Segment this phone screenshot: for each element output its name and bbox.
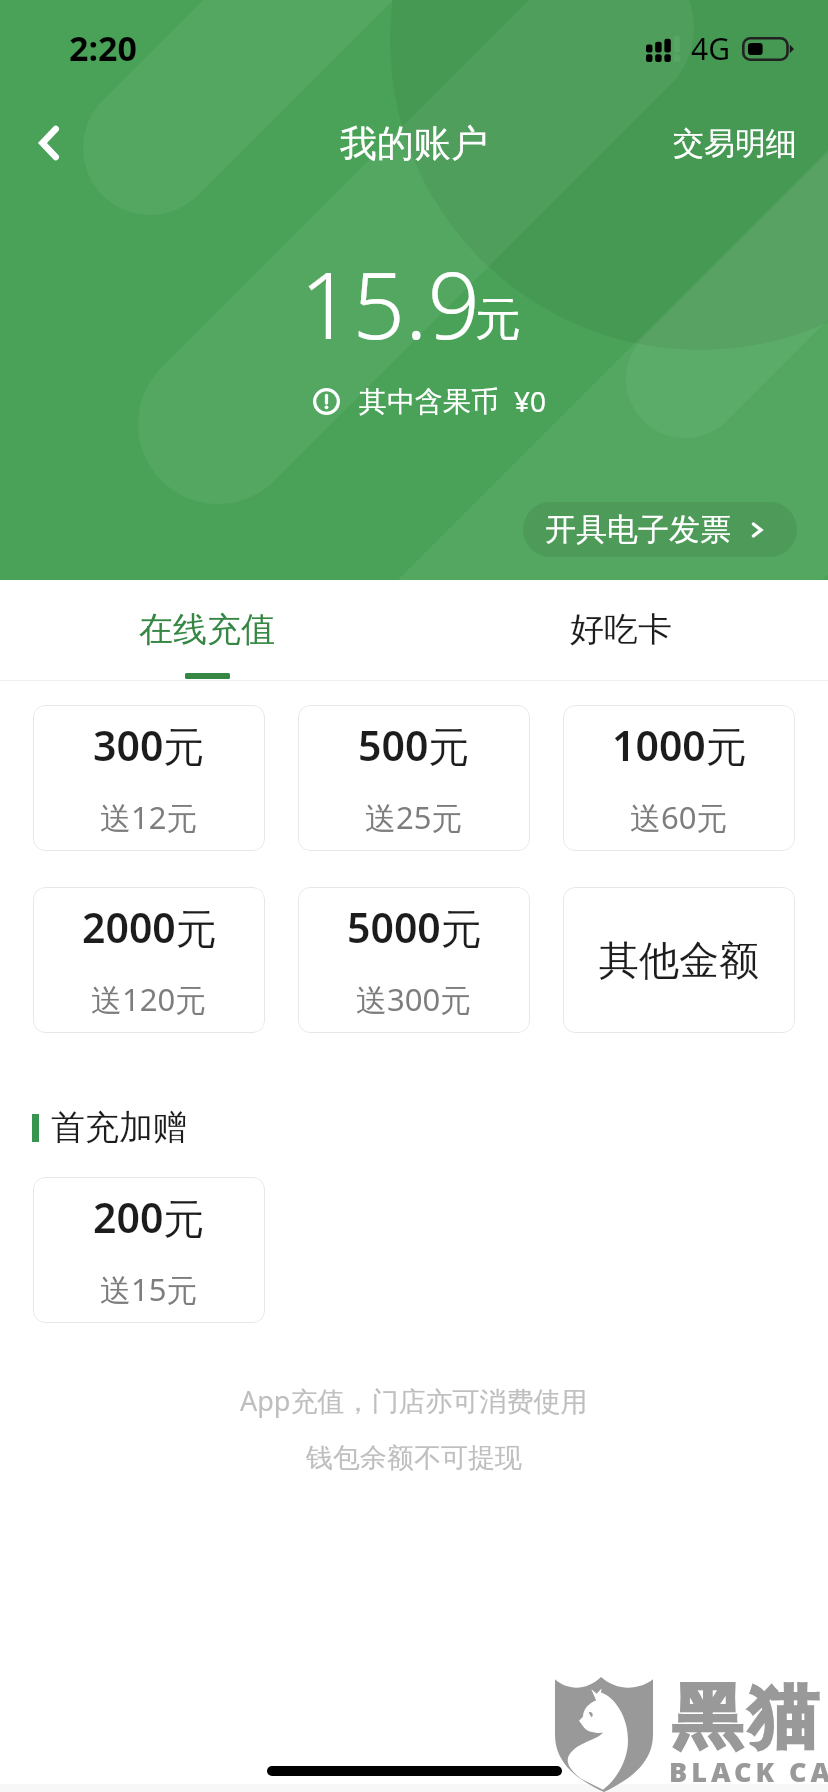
staticText: 送15元 [100,1268,198,1310]
button[interactable]: 好吃卡 [414,580,828,681]
button[interactable]: 300元 [33,705,265,851]
staticText: 元 [475,291,521,349]
button[interactable]: 5000元 [298,887,530,1033]
staticText: 交易明细 [673,124,797,163]
staticText: 2:20 [69,25,137,71]
staticText: 2000元 [82,899,217,955]
staticText: App充值，门店亦可消费使用 [240,1382,588,1419]
button[interactable]: 500元 [298,705,530,851]
staticText: 在线充值 [139,608,275,651]
staticText: 其他金额 [599,935,759,985]
button[interactable]: Back [5,98,95,188]
staticText: 1000元 [612,717,747,773]
staticText: 其中含果币 [359,384,499,419]
staticText: BLACK CAT [669,1753,828,1790]
staticText: 首充加赠 [51,1106,187,1149]
staticText: 5000元 [347,899,482,955]
staticText: ¥0 [514,382,547,420]
staticText: 送60元 [630,796,728,838]
staticText: 500元 [358,717,470,773]
button[interactable]: 在线充值 [0,580,414,681]
staticText: 开具电子发票 [545,510,731,549]
button[interactable]: 交易明细 [642,104,828,183]
button[interactable]: 其他金额 [563,887,795,1033]
staticText: 送25元 [365,796,463,838]
staticText: 黑猫 [669,1674,821,1762]
button[interactable]: 1000元 [563,705,795,851]
staticText: 15.9 [300,241,481,366]
staticText: 200元 [93,1189,205,1245]
staticText: 300元 [93,717,205,773]
button[interactable]: 2000元 [33,887,265,1033]
staticText: 我的账户 [340,120,488,167]
staticText: 钱包余额不可提现 [306,1441,522,1475]
staticText: 送300元 [356,978,472,1020]
staticText: 4G [691,28,730,69]
staticText: 送120元 [91,978,207,1020]
button[interactable]: 开具电子发票 [523,502,797,557]
staticText: 送12元 [100,796,198,838]
staticText: 好吃卡 [570,608,672,651]
button[interactable]: 200元 [33,1177,265,1323]
